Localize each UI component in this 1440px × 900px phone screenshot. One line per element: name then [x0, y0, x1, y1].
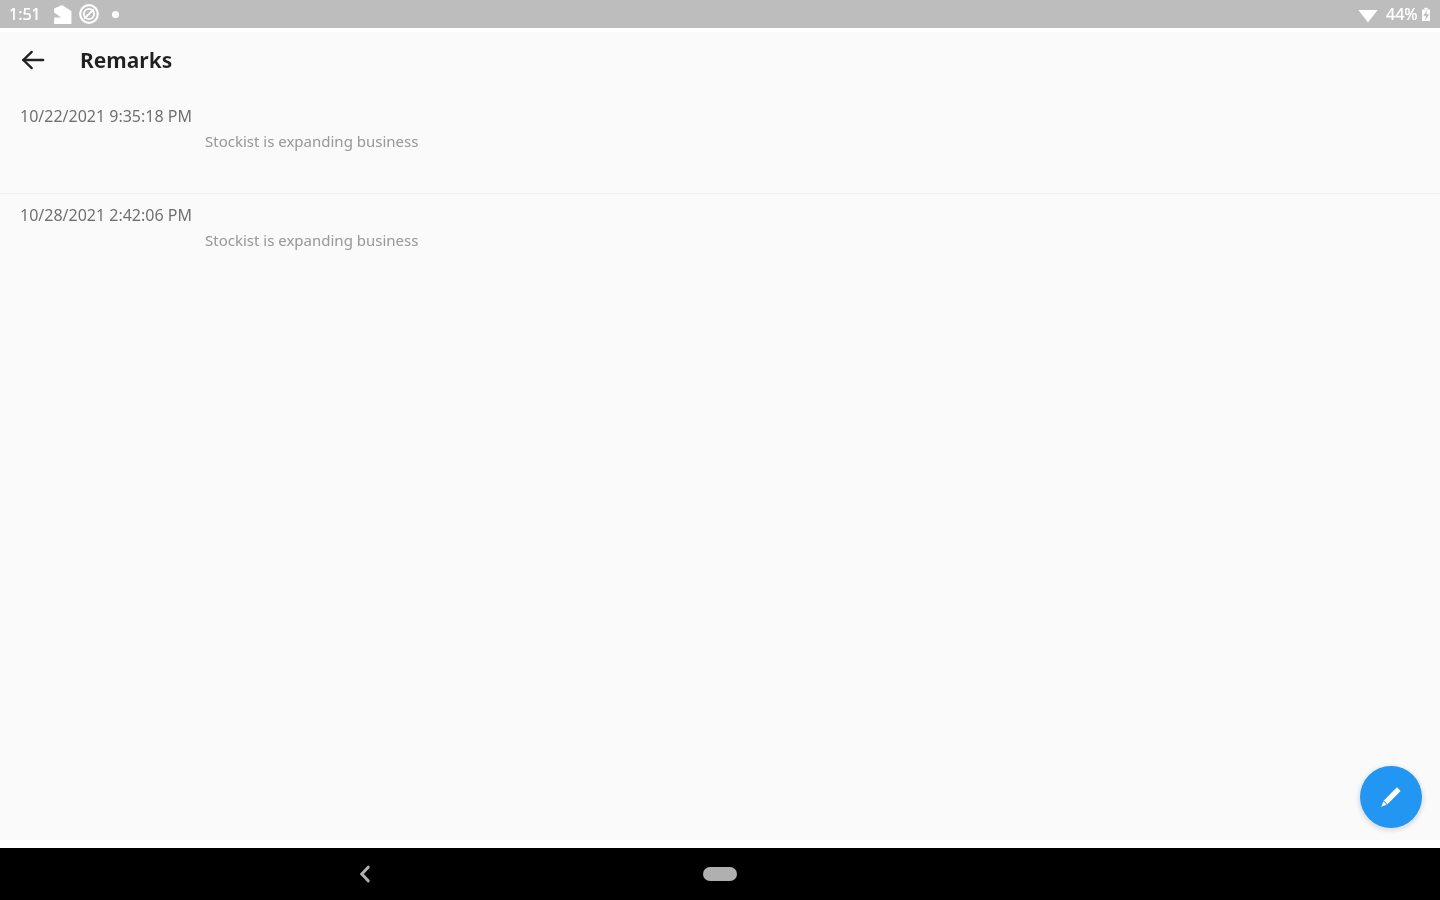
staticText: Stockist is expanding business [205, 230, 419, 250]
staticText: 10/22/2021 9:35:18 PM [20, 105, 192, 127]
staticText: 1:51 [9, 3, 41, 25]
staticText: 10/28/2021 2:42:06 PM [20, 204, 192, 226]
staticText: 44% [1386, 3, 1418, 25]
staticText: Remarks [80, 46, 173, 75]
button[interactable]: 10/22/2021 9:35:18 PM [0, 95, 1440, 193]
button[interactable]: Back [9, 36, 57, 84]
staticText: Stockist is expanding business [205, 131, 419, 151]
button[interactable]: Home [703, 867, 737, 881]
button[interactable]: Edit [1360, 766, 1422, 828]
button[interactable]: 10/28/2021 2:42:06 PM [0, 194, 1440, 292]
button[interactable]: Back [341, 850, 389, 898]
